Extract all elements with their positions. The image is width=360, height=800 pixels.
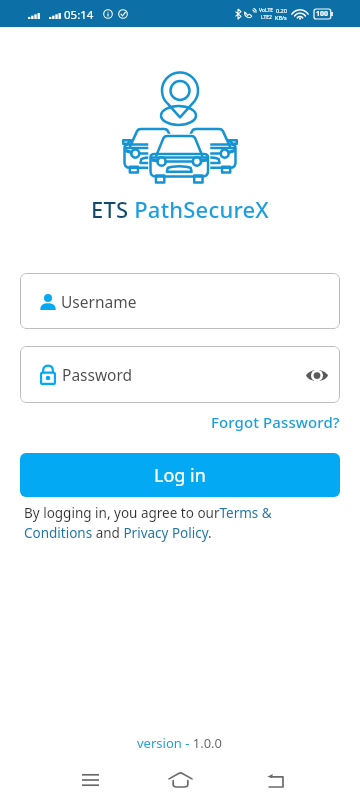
staticText: VoLTE	[259, 7, 274, 14]
staticText: Username	[61, 291, 137, 312]
staticText: version - 1.0.0	[137, 734, 223, 752]
button[interactable]: Show password	[302, 360, 332, 390]
staticText: KB/s	[275, 14, 287, 21]
staticText: 05:14	[64, 7, 94, 23]
staticText: ETS PathSecureX	[91, 194, 269, 224]
button[interactable]: Password	[20, 346, 340, 403]
button[interactable]: Username	[20, 273, 340, 329]
button[interactable]: Home	[158, 760, 202, 800]
button[interactable]: Log in	[20, 453, 340, 497]
staticText: By logging in, you agree to ourTerms & C…	[24, 504, 286, 542]
staticText: Log in	[154, 463, 206, 488]
staticText: Forgot Password?	[211, 412, 340, 432]
staticText: LTE2	[261, 14, 272, 21]
button[interactable]: Forgot Password?	[211, 412, 340, 432]
button[interactable]: Recent apps	[68, 760, 112, 800]
button[interactable]: Back	[253, 760, 297, 800]
staticText: 100	[316, 9, 329, 19]
staticText: Password	[62, 364, 133, 385]
staticText: 0.20	[276, 7, 287, 14]
